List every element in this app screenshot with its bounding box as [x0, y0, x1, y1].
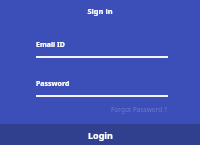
- button[interactable]: Password: [36, 79, 168, 97]
- staticText: Sign in: [0, 6, 200, 16]
- staticText: Password: [36, 79, 70, 89]
- button[interactable]: Email ID: [36, 40, 168, 58]
- button[interactable]: Login: [0, 124, 200, 145]
- staticText: Email ID: [36, 40, 65, 50]
- button[interactable]: Forgot Password ?: [110, 104, 168, 115]
- staticText: Login: [88, 129, 113, 141]
- staticText: Forgot Password ?: [111, 105, 167, 114]
